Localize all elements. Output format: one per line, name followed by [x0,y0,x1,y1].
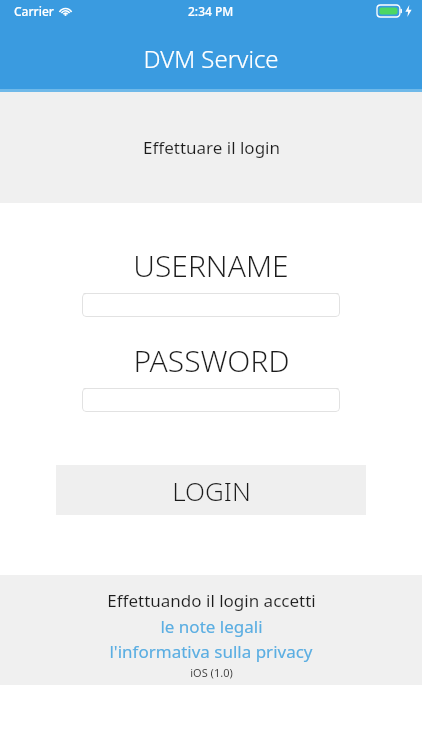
staticText: l'informativa sulla privacy [109,640,313,663]
button[interactable]: Password input [82,388,340,412]
staticText: le note legali [160,615,263,638]
button[interactable]: l'informativa sulla privacy [109,640,313,663]
staticText: 2:34 PM [188,3,234,19]
staticText: Effettuare il login [143,136,280,159]
staticText: Effettuando il login accetti [107,589,316,612]
staticText: PASSWORD [133,340,290,381]
staticText: DVM Service [143,42,279,75]
button[interactable]: le note legali [160,615,263,638]
staticText: LOGIN [172,473,251,508]
staticText: iOS (1.0) [190,665,233,680]
button[interactable]: Username input [82,293,340,317]
staticText: Carrier [14,3,54,19]
button[interactable]: LOGIN [56,465,366,515]
staticText: USERNAME [133,245,289,286]
